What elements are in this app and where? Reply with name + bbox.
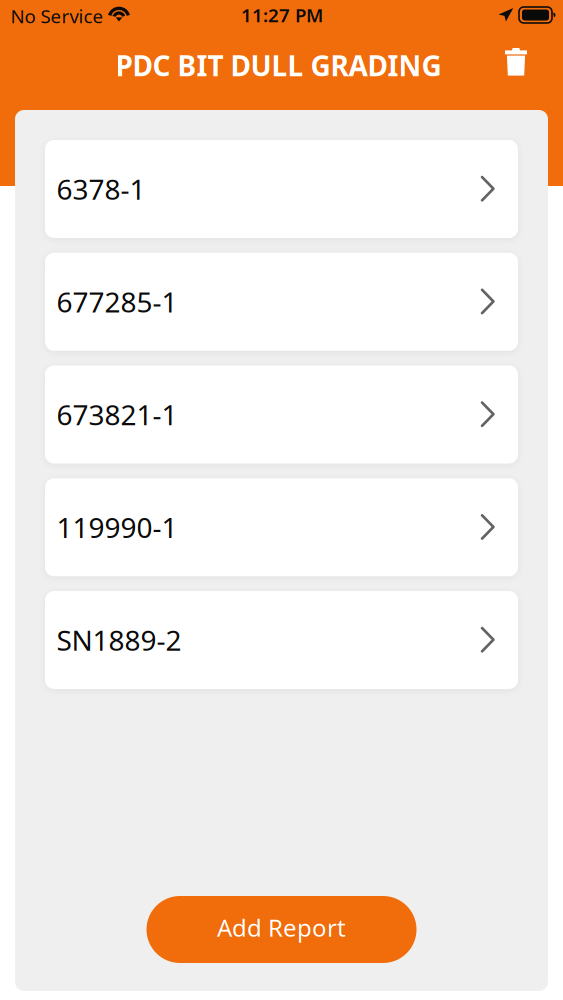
staticText: SN1889-2 <box>56 621 181 659</box>
staticText: 6378-1 <box>56 170 145 208</box>
button[interactable]: 677285-1 <box>45 253 518 351</box>
button[interactable]: 119990-1 <box>45 478 518 576</box>
staticText: 677285-1 <box>56 283 177 320</box>
staticText: Add Report <box>217 912 346 943</box>
staticText: PDC BIT DULL GRADING <box>115 47 441 84</box>
staticText: No Service <box>10 4 103 28</box>
button[interactable]: Delete <box>494 40 538 84</box>
button[interactable]: 673821-1 <box>45 365 518 463</box>
staticText: 11:27 PM <box>241 3 323 27</box>
staticText: 673821-1 <box>56 396 177 433</box>
button[interactable]: 6378-1 <box>45 140 518 238</box>
staticText: 119990-1 <box>56 509 177 546</box>
button[interactable]: Add Report <box>146 896 416 963</box>
button[interactable]: SN1889-2 <box>45 591 518 689</box>
